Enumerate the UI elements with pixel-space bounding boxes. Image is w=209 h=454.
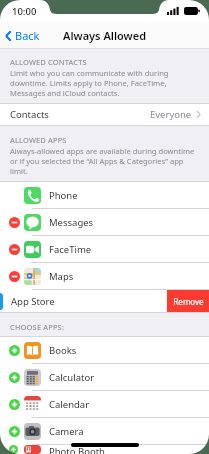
other: Remove app	[9, 244, 20, 255]
staticText: 10:00	[12, 5, 37, 18]
staticText: Books	[49, 344, 77, 357]
staticText: FaceTime	[49, 243, 92, 256]
staticText: Everyone	[150, 108, 192, 121]
button[interactable]: Add app	[0, 337, 209, 364]
staticText: Always Allowed	[63, 28, 147, 43]
other: Add app	[9, 399, 20, 410]
button[interactable]: Contacts	[0, 104, 209, 125]
staticText: Photo Booth	[49, 445, 105, 454]
staticText: ALLOWED APPS	[10, 135, 67, 145]
staticText: Maps	[49, 270, 74, 283]
staticText: ALLOWED CONTACTS	[10, 57, 87, 67]
button[interactable]: Add app	[0, 391, 209, 418]
button[interactable]: App Store	[0, 290, 167, 312]
button[interactable]: Phone	[0, 182, 209, 209]
button[interactable]: Add app	[0, 418, 209, 445]
staticText: Remove	[173, 296, 204, 307]
staticText: Calendar	[49, 398, 90, 411]
other: Add app	[9, 345, 20, 356]
other: Add app	[9, 426, 20, 437]
staticText: CHOOSE APPS:	[10, 322, 65, 332]
button[interactable]: Remove app	[0, 263, 209, 290]
staticText: Always-allowed apps are available during…	[10, 146, 201, 176]
button[interactable]: Remove	[167, 290, 209, 312]
staticText: Calculator	[49, 371, 95, 384]
button[interactable]: Remove app	[0, 209, 209, 236]
other: Remove app	[9, 271, 20, 282]
staticText: Limit who you can communicate with durin…	[10, 68, 199, 98]
staticText: Back	[15, 28, 40, 43]
button[interactable]: Add app	[0, 445, 209, 454]
other: Add app	[9, 372, 20, 383]
staticText: Phone	[49, 189, 78, 202]
other: Remove app	[9, 217, 20, 228]
staticText: App Store	[11, 295, 55, 308]
staticText: Camera	[49, 425, 84, 438]
other: Add app	[9, 445, 20, 454]
staticText: Messages	[49, 216, 94, 229]
button[interactable]: Add app	[0, 364, 209, 391]
staticText: Contacts	[10, 108, 49, 121]
button[interactable]: Back	[5, 28, 40, 43]
button[interactable]: Remove app	[0, 236, 209, 263]
